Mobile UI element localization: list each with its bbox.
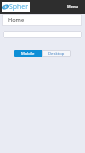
button[interactable]: Mobile	[14, 50, 42, 57]
button[interactable]: Sphere	[2, 2, 30, 12]
button[interactable]: Menu	[67, 4, 79, 9]
staticText: Mobile	[21, 51, 35, 57]
button[interactable]	[3, 31, 82, 38]
staticText: Home	[8, 16, 25, 24]
staticText: Desktop	[48, 51, 65, 57]
button[interactable]: Home	[2, 14, 82, 26]
staticText: Sphere	[9, 2, 30, 12]
staticText: Menu	[67, 4, 79, 9]
button[interactable]: Desktop	[42, 50, 71, 57]
